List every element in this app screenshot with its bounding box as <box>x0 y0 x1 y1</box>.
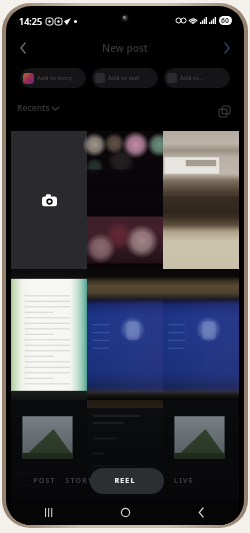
button[interactable]: Recents <box>17 102 59 114</box>
button[interactable]: LIVE <box>163 468 205 494</box>
staticText: REEL <box>114 476 136 486</box>
button[interactable]: Add to reel <box>92 68 158 88</box>
staticText: Recents <box>17 102 50 114</box>
button[interactable]: POST <box>23 468 65 494</box>
staticText: Add to story <box>37 74 73 82</box>
button[interactable]: Next <box>215 39 239 57</box>
button[interactable]: REEL <box>104 468 146 494</box>
staticText: Add to reel <box>108 74 140 82</box>
button[interactable]: Add to... <box>164 68 230 88</box>
staticText: LIVE <box>174 476 194 486</box>
button[interactable]: Home <box>87 499 163 525</box>
button[interactable]: Recent apps <box>11 499 87 525</box>
staticText: Add to... <box>180 74 204 82</box>
staticText: 60 <box>221 16 230 25</box>
staticText: STORY <box>65 476 94 486</box>
button[interactable]: Add to story <box>20 68 86 88</box>
staticText: New post <box>102 41 148 55</box>
button[interactable]: Back <box>11 39 35 57</box>
button[interactable]: Back <box>163 499 239 525</box>
button[interactable]: STORY <box>58 468 100 494</box>
button[interactable]: Camera <box>11 131 87 269</box>
staticText: 14:25 <box>19 15 43 27</box>
button[interactable]: Select multiple <box>215 102 233 120</box>
staticText: POST <box>33 476 56 486</box>
